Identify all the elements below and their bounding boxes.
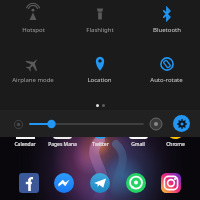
- staticText: Location: [87, 76, 112, 84]
- button[interactable]: Messenger: [53, 172, 75, 194]
- button[interactable]: Instagram: [160, 172, 182, 194]
- staticText: Pages Mana: [48, 141, 77, 148]
- button[interactable]: Pages Mana: [45, 120, 79, 148]
- staticText: Auto-rotate: [150, 76, 183, 84]
- button[interactable]: Airplane mode: [0, 50, 66, 100]
- button[interactable]: Facebook: [18, 172, 40, 194]
- staticText: Airplane mode: [12, 76, 54, 84]
- staticText: Chrome: [166, 141, 185, 148]
- button[interactable]: Auto-rotate: [133, 50, 200, 100]
- button[interactable]: Hotspot: [0, 0, 66, 50]
- staticText: Hotspot: [22, 26, 45, 34]
- staticText: Twitter: [92, 141, 109, 148]
- button[interactable]: Auto brightness: [149, 117, 163, 131]
- button[interactable]: Telegram: [89, 172, 111, 194]
- staticText: Gmail: [131, 141, 145, 148]
- button[interactable]: Twitter: [83, 120, 117, 148]
- button[interactable]: Bluetooth: [133, 0, 200, 50]
- button[interactable]: Location: [66, 50, 133, 100]
- staticText: Bluetooth: [153, 26, 181, 34]
- button[interactable]: Calendar: [8, 120, 42, 148]
- button[interactable]: Flashlight: [66, 0, 133, 50]
- button[interactable]: Gmail: [121, 120, 155, 148]
- button[interactable]: Brightness low: [12, 118, 24, 130]
- button[interactable]: WhatsApp: [125, 172, 147, 194]
- button[interactable]: Settings: [173, 115, 190, 132]
- staticText: Flashlight: [86, 26, 114, 34]
- button[interactable]: Brightness slider: [30, 117, 143, 131]
- button[interactable]: Chrome: [158, 120, 192, 148]
- staticText: Calendar: [14, 141, 36, 148]
